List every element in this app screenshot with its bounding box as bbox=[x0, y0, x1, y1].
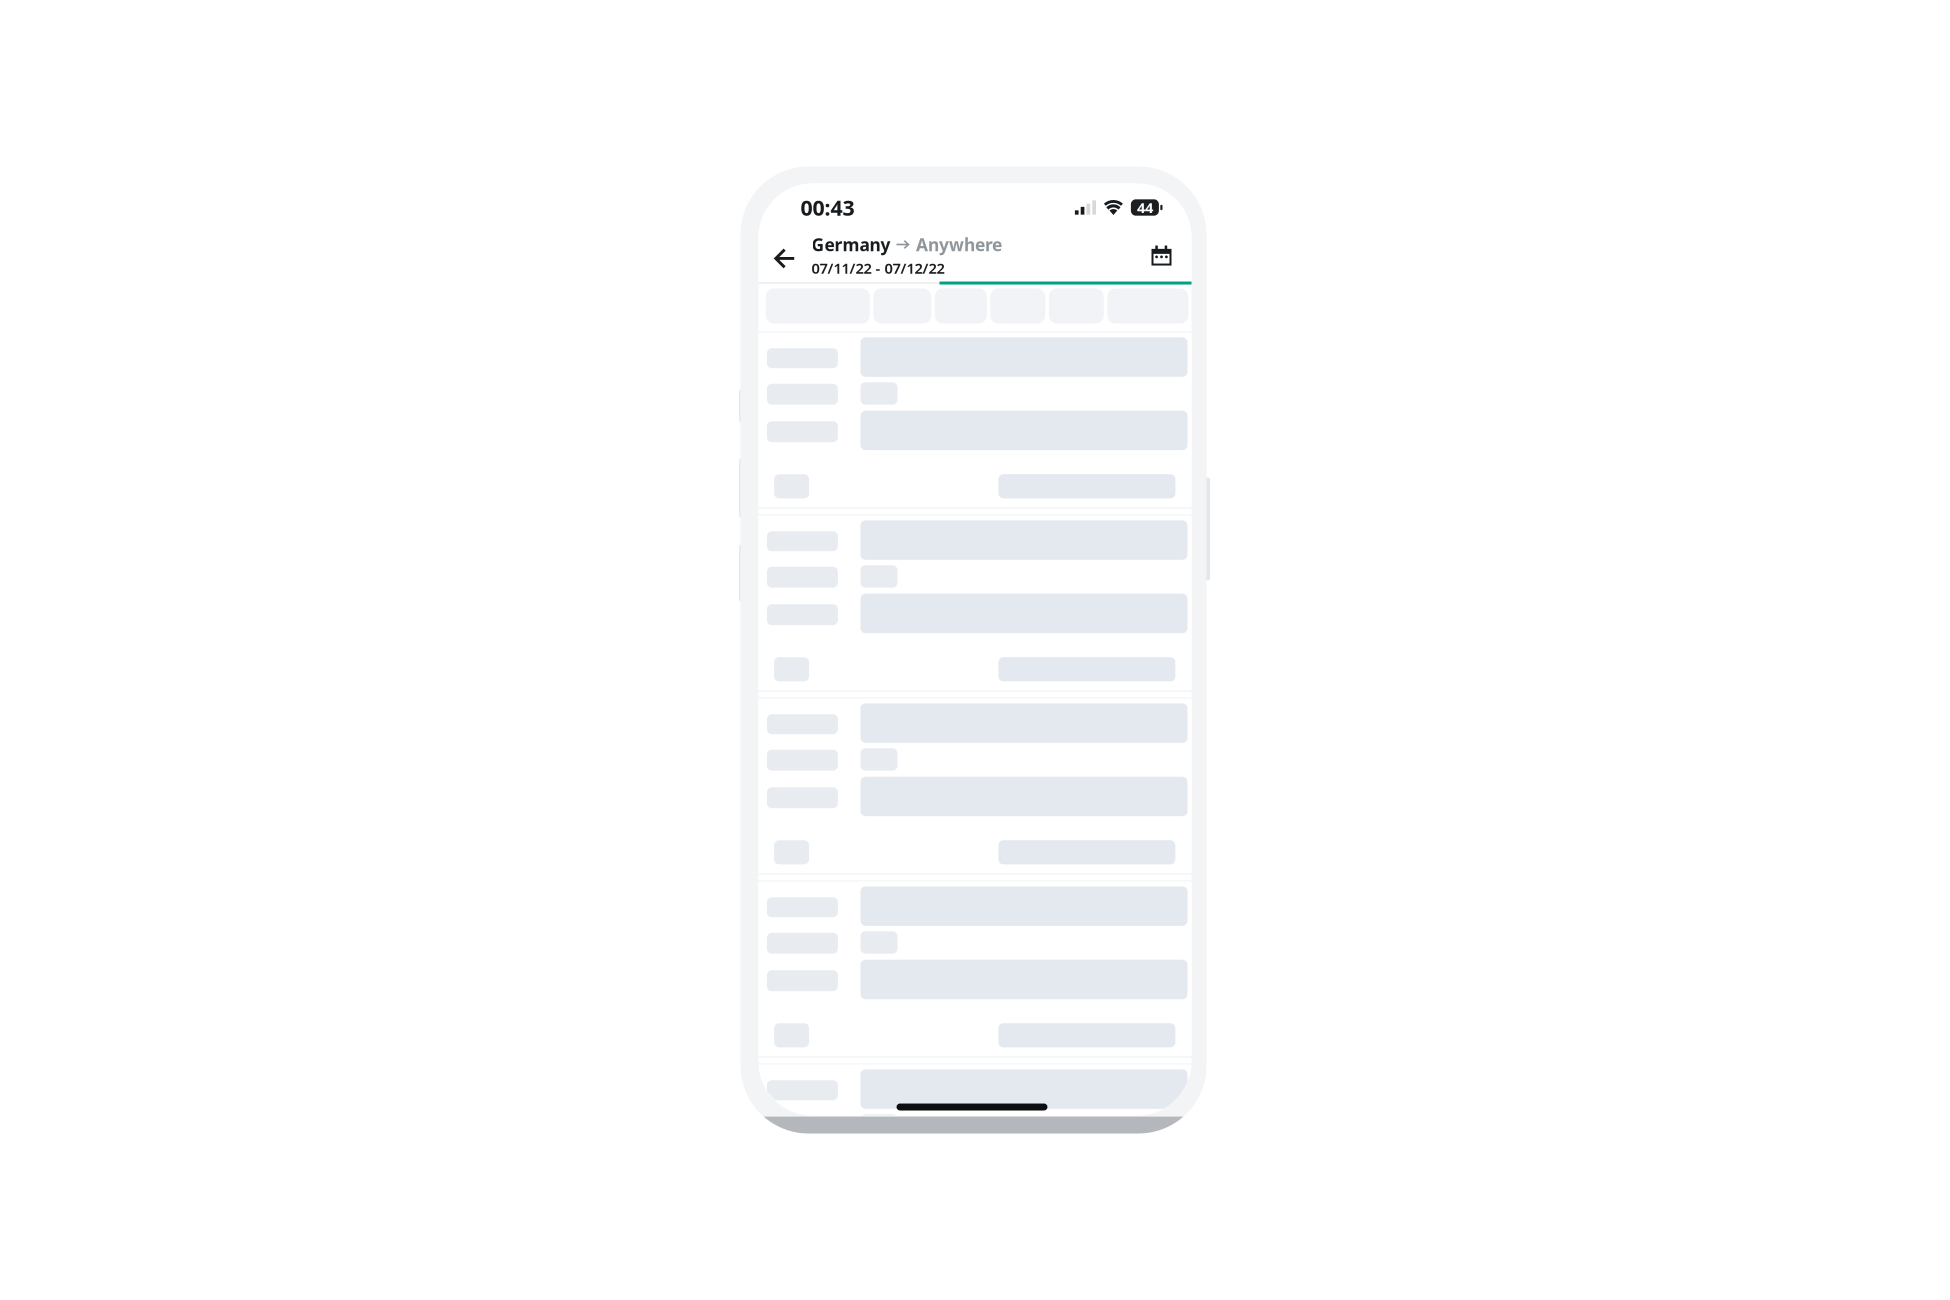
button[interactable]: Change dates bbox=[1140, 234, 1182, 276]
staticText: 07/11/22 - 07/12/22 bbox=[811, 258, 944, 278]
staticText: Anywhere bbox=[916, 233, 1002, 256]
staticText: 44 bbox=[1137, 198, 1153, 217]
button[interactable]: Back bbox=[763, 237, 805, 279]
staticText: Germany bbox=[811, 233, 890, 256]
staticText: 00:43 bbox=[800, 193, 854, 222]
